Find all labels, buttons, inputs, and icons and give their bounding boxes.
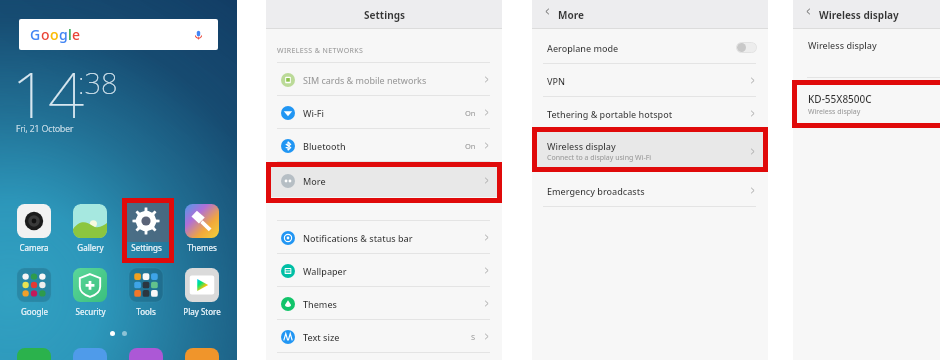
staticText: G	[30, 25, 41, 44]
staticText: Wireless display	[547, 140, 616, 152]
button[interactable]: Security	[62, 268, 118, 317]
staticText: Fri, 21 October	[16, 123, 74, 135]
staticText: Aeroplane mode	[547, 42, 619, 54]
staticText: Play Store	[183, 306, 221, 317]
staticText: Google	[21, 306, 48, 317]
staticText: o	[50, 25, 59, 44]
button[interactable]: Settings	[118, 204, 174, 253]
staticText: On	[465, 141, 476, 151]
button[interactable]: Themes	[266, 287, 502, 320]
staticText: More	[303, 175, 326, 187]
staticText: 14	[12, 51, 84, 137]
staticText: e	[72, 25, 81, 44]
button[interactable]: Wireless display	[793, 29, 940, 61]
staticText: Text size	[303, 331, 340, 343]
staticText: Settings	[364, 8, 405, 22]
button[interactable]: Google	[6, 268, 62, 317]
button[interactable]: Wallpaper	[266, 254, 502, 287]
staticText: WIRELESS & NETWORKS	[277, 46, 364, 56]
button[interactable]: Back	[797, 0, 819, 22]
staticText: Themes	[303, 298, 337, 310]
staticText: Emergency broadcasts	[547, 185, 645, 197]
button[interactable]: Aeroplane mode	[532, 31, 768, 64]
button[interactable]: Themes	[174, 204, 230, 253]
button[interactable]: Gallery	[62, 204, 118, 253]
staticText: l	[68, 25, 72, 44]
staticText: SIM cards & mobile networks	[303, 74, 427, 86]
staticText: On	[465, 108, 476, 118]
staticText: Tethering & portable hotspot	[547, 108, 673, 120]
button[interactable]: Back	[536, 0, 558, 22]
staticText: Wi-Fi	[303, 107, 324, 119]
button[interactable]: Wireless display	[532, 131, 768, 172]
staticText: S	[471, 332, 476, 342]
staticText: g	[59, 25, 68, 44]
button[interactable]: G	[19, 19, 218, 50]
staticText: Settings	[131, 242, 162, 253]
staticText: Notifications & status bar	[303, 232, 413, 244]
button[interactable]: Aeroplane mode toggle	[736, 42, 757, 53]
button[interactable]: Notifications & status bar	[266, 221, 502, 254]
button[interactable]: Play Store	[174, 268, 230, 317]
staticText: Tools	[136, 306, 156, 317]
button[interactable]: KD-55X8500C	[793, 86, 940, 122]
button[interactable]: Wi-Fi	[266, 96, 502, 129]
button[interactable]: Tools	[118, 268, 174, 317]
button[interactable]: Text size	[266, 320, 502, 353]
button[interactable]: Voice search	[187, 24, 209, 46]
staticText: Wireless display	[808, 39, 877, 51]
staticText: Connect to a display using Wi-Fi	[547, 153, 652, 163]
staticText: o	[41, 25, 50, 44]
staticText: Wireless display	[808, 107, 861, 117]
button[interactable]: VPN	[532, 64, 768, 97]
staticText: Security	[75, 306, 106, 317]
button[interactable]: SIM cards & mobile networks	[266, 63, 502, 96]
staticText: Gallery	[77, 242, 104, 253]
staticText: KD-55X8500C	[808, 92, 872, 106]
staticText: Wireless display	[819, 8, 899, 22]
staticText: Camera	[19, 242, 49, 253]
button[interactable]: Emergency broadcasts	[532, 174, 768, 207]
button[interactable]: Bluetooth	[266, 129, 502, 162]
staticText: Bluetooth	[303, 140, 346, 152]
staticText: More	[558, 8, 584, 22]
button[interactable]: Camera	[6, 204, 62, 253]
staticText: :38	[78, 63, 118, 102]
staticText: Wallpaper	[303, 265, 347, 277]
staticText: VPN	[547, 75, 566, 87]
button[interactable]: Tethering & portable hotspot	[532, 97, 768, 130]
button[interactable]: More	[266, 164, 502, 197]
staticText: Themes	[187, 242, 217, 253]
